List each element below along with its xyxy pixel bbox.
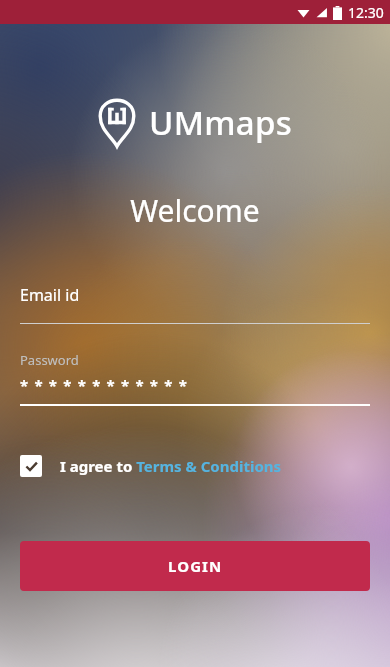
button[interactable]: I agree to Terms & Conditions bbox=[20, 451, 282, 481]
button[interactable]: LOGIN bbox=[20, 541, 370, 591]
staticText: 12:30 bbox=[348, 3, 384, 22]
button[interactable]: Email id bbox=[20, 284, 370, 324]
staticText: Email id bbox=[20, 284, 80, 306]
staticText: Welcome bbox=[0, 190, 390, 231]
staticText: I agree to Terms & Conditions bbox=[60, 456, 282, 476]
staticText: Password bbox=[20, 351, 79, 369]
staticText: * * * * * * * * * * * * bbox=[20, 375, 189, 395]
other: Battery bbox=[333, 6, 342, 20]
staticText: LOGIN bbox=[168, 556, 223, 576]
other: Signal bbox=[315, 6, 328, 19]
other: Wi-Fi bbox=[297, 6, 310, 19]
staticText: UMmaps bbox=[149, 100, 293, 145]
button[interactable]: Password bbox=[20, 351, 370, 406]
